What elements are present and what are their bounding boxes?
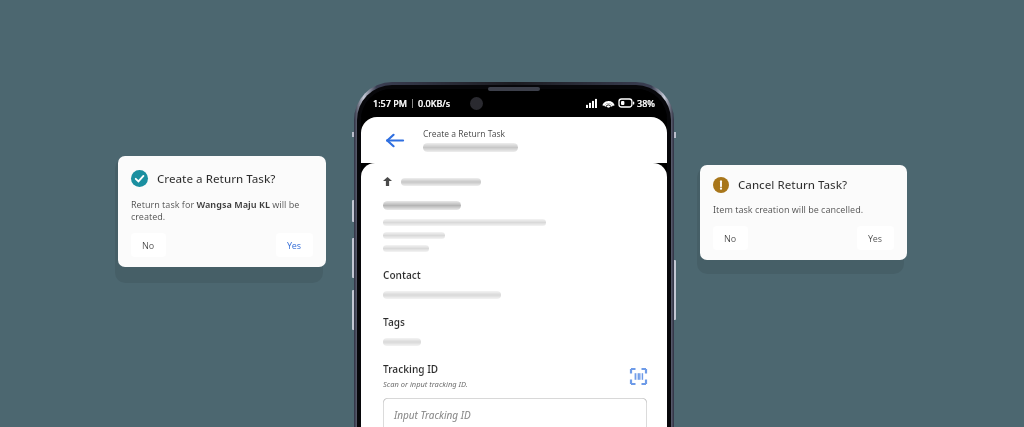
staticText: Input Tracking ID: [394, 408, 471, 422]
staticText: 0.0KB/s: [418, 97, 451, 109]
other: Success: [131, 170, 148, 187]
staticText: No: [142, 239, 155, 251]
button[interactable]: No: [131, 233, 166, 257]
staticText: Yes: [868, 232, 883, 244]
staticText: Scan or input tracking ID.: [383, 379, 468, 389]
button[interactable]: Back: [381, 127, 407, 153]
staticText: Tracking ID: [383, 362, 439, 376]
staticText: Cancel Return Task?: [738, 177, 848, 193]
staticText: Yes: [287, 239, 302, 251]
staticText: 38%: [637, 97, 655, 109]
staticText: 1:57 PM: [373, 97, 407, 109]
button[interactable]: Input Tracking ID: [383, 398, 647, 427]
staticText: No: [724, 232, 737, 244]
button[interactable]: Yes: [276, 233, 313, 257]
staticText: Item task creation will be cancelled.: [713, 203, 864, 215]
staticText: Create a Return Task?: [157, 171, 276, 187]
other: Warning: [713, 177, 729, 193]
button[interactable]: No: [713, 226, 748, 250]
staticText: Create a Return Task: [423, 128, 506, 140]
button[interactable]: Yes: [857, 226, 894, 250]
button[interactable]: Scan barcode: [629, 367, 647, 385]
staticText: Return task for Wangsa Maju KL will be c…: [131, 198, 313, 223]
staticText: Contact: [383, 268, 421, 282]
staticText: Tags: [383, 315, 405, 329]
